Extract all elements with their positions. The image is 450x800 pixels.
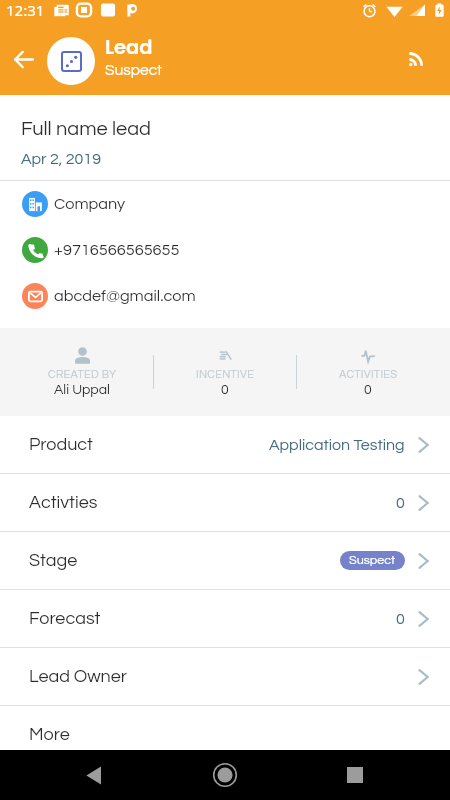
staticText: Product [29,435,93,454]
staticText: Activties [29,493,98,512]
button[interactable]: +9716566565655 [0,227,450,273]
staticText: 0 [396,495,405,511]
staticText: Full name lead [21,119,151,140]
staticText: 12:31 [6,0,45,20]
button[interactable]: Company [0,181,450,227]
button[interactable]: CREATED BY [11,347,153,397]
staticText: INCENTIVE [196,369,255,380]
staticText: Apr 2, 2019 [21,151,101,167]
button[interactable]: Home [204,754,246,796]
staticText: 0 [364,383,372,397]
button[interactable]: ACTIVITIES [297,347,439,397]
staticText: 0 [396,611,405,627]
staticText: abcdef@gmail.com [54,288,196,305]
button[interactable]: INCENTIVE [154,347,296,397]
button[interactable]: More [0,706,450,763]
button[interactable]: Product [0,416,450,473]
button[interactable]: Recents [334,754,376,796]
staticText: Suspect [349,554,396,567]
staticText: ACTIVITIES [339,369,398,380]
staticText: Company [54,196,126,213]
button[interactable]: Back [1,37,45,81]
button[interactable]: Back [74,754,116,796]
staticText: Suspect [105,62,163,78]
staticText: 0 [221,383,229,397]
staticText: Lead [105,34,153,61]
staticText: Application Testing [269,437,405,453]
button[interactable]: Activties [0,474,450,531]
staticText: More [29,725,70,744]
button[interactable]: Forecast [0,590,450,647]
staticText: CREATED BY [48,369,117,380]
button[interactable]: abcdef@gmail.com [0,273,450,319]
button[interactable]: Lead Owner [0,648,450,705]
staticText: Ali Uppal [54,383,110,397]
button[interactable]: Feed [393,37,437,81]
staticText: Lead Owner [29,667,128,686]
staticText: +9716566565655 [54,242,180,259]
staticText: Forecast [29,609,101,628]
staticText: Stage [29,551,78,570]
button[interactable]: Stage [0,532,450,589]
